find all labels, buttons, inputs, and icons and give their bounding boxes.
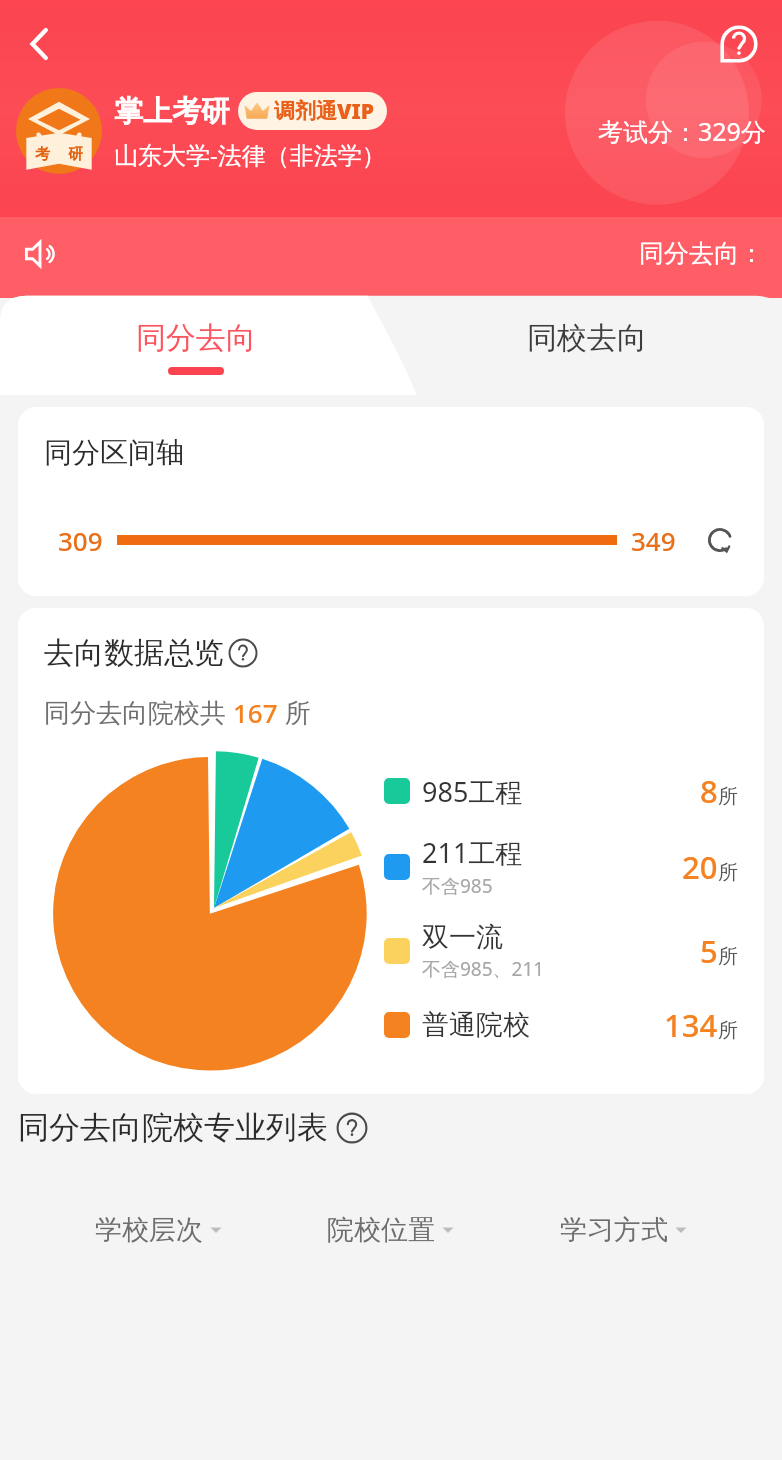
button[interactable]: 普通院校 [384, 1004, 738, 1046]
staticText: 所 [718, 944, 738, 969]
staticText: 5 [700, 930, 718, 972]
staticText: 同分去向 [136, 319, 256, 357]
staticText: 学校层次 [95, 1213, 203, 1247]
staticText: 同分区间轴 [44, 435, 184, 470]
button[interactable]: 双一流 [384, 920, 738, 982]
staticText: 同分去向院校共 [44, 694, 233, 730]
staticText: 院校位置 [327, 1213, 435, 1247]
staticText: 211工程 [422, 834, 523, 871]
button[interactable]: 学习方式 [550, 1207, 698, 1253]
staticText: 考 [35, 145, 50, 164]
staticText: 20 [682, 846, 718, 888]
staticText: 985工程 [422, 773, 523, 810]
staticText: 研 [68, 145, 83, 164]
staticText: 所 [718, 784, 738, 809]
button[interactable]: 学校层次 [85, 1207, 233, 1253]
button[interactable]: Info [228, 638, 258, 668]
button[interactable]: 985工程 [384, 770, 738, 812]
staticText: 所 [718, 1018, 738, 1043]
staticText: 所 [718, 860, 738, 885]
staticText: 167 [233, 695, 278, 730]
button[interactable]: 211工程 [384, 834, 738, 899]
button[interactable]: Announcement [18, 232, 62, 276]
button[interactable]: 同分去向 [0, 298, 391, 395]
staticText: 309 [58, 523, 103, 558]
staticText: 不含985 [422, 873, 493, 899]
button[interactable]: 院校位置 [317, 1207, 465, 1253]
staticText: 所 [278, 694, 311, 730]
staticText: 山东大学-法律（非法学） [114, 138, 386, 171]
button[interactable]: 调剂通 [238, 92, 387, 130]
staticText: 134 [664, 1004, 718, 1046]
staticText: 双一流 [422, 920, 503, 954]
button[interactable]: Back [10, 16, 66, 72]
button[interactable]: Reset [702, 522, 738, 558]
staticText: 掌上考研 [114, 93, 230, 130]
staticText: 8 [700, 770, 718, 812]
staticText: 349 [631, 523, 676, 558]
staticText: 同分去向： [639, 238, 764, 269]
staticText: 学习方式 [560, 1213, 668, 1247]
button[interactable]: Info [336, 1112, 368, 1144]
staticText: 调剂通 [274, 98, 337, 124]
staticText: 同分去向院校专业列表 [18, 1108, 328, 1147]
button[interactable]: Help [712, 17, 766, 71]
staticText: VIP [337, 97, 375, 126]
staticText: 同校去向 [527, 319, 647, 357]
staticText: 考试分：329分 [598, 114, 766, 148]
button[interactable]: 同校去向 [391, 298, 782, 395]
staticText: 普通院校 [422, 1008, 530, 1042]
staticText: 去向数据总览 [44, 634, 224, 672]
staticText: 不含985、211 [422, 956, 545, 982]
